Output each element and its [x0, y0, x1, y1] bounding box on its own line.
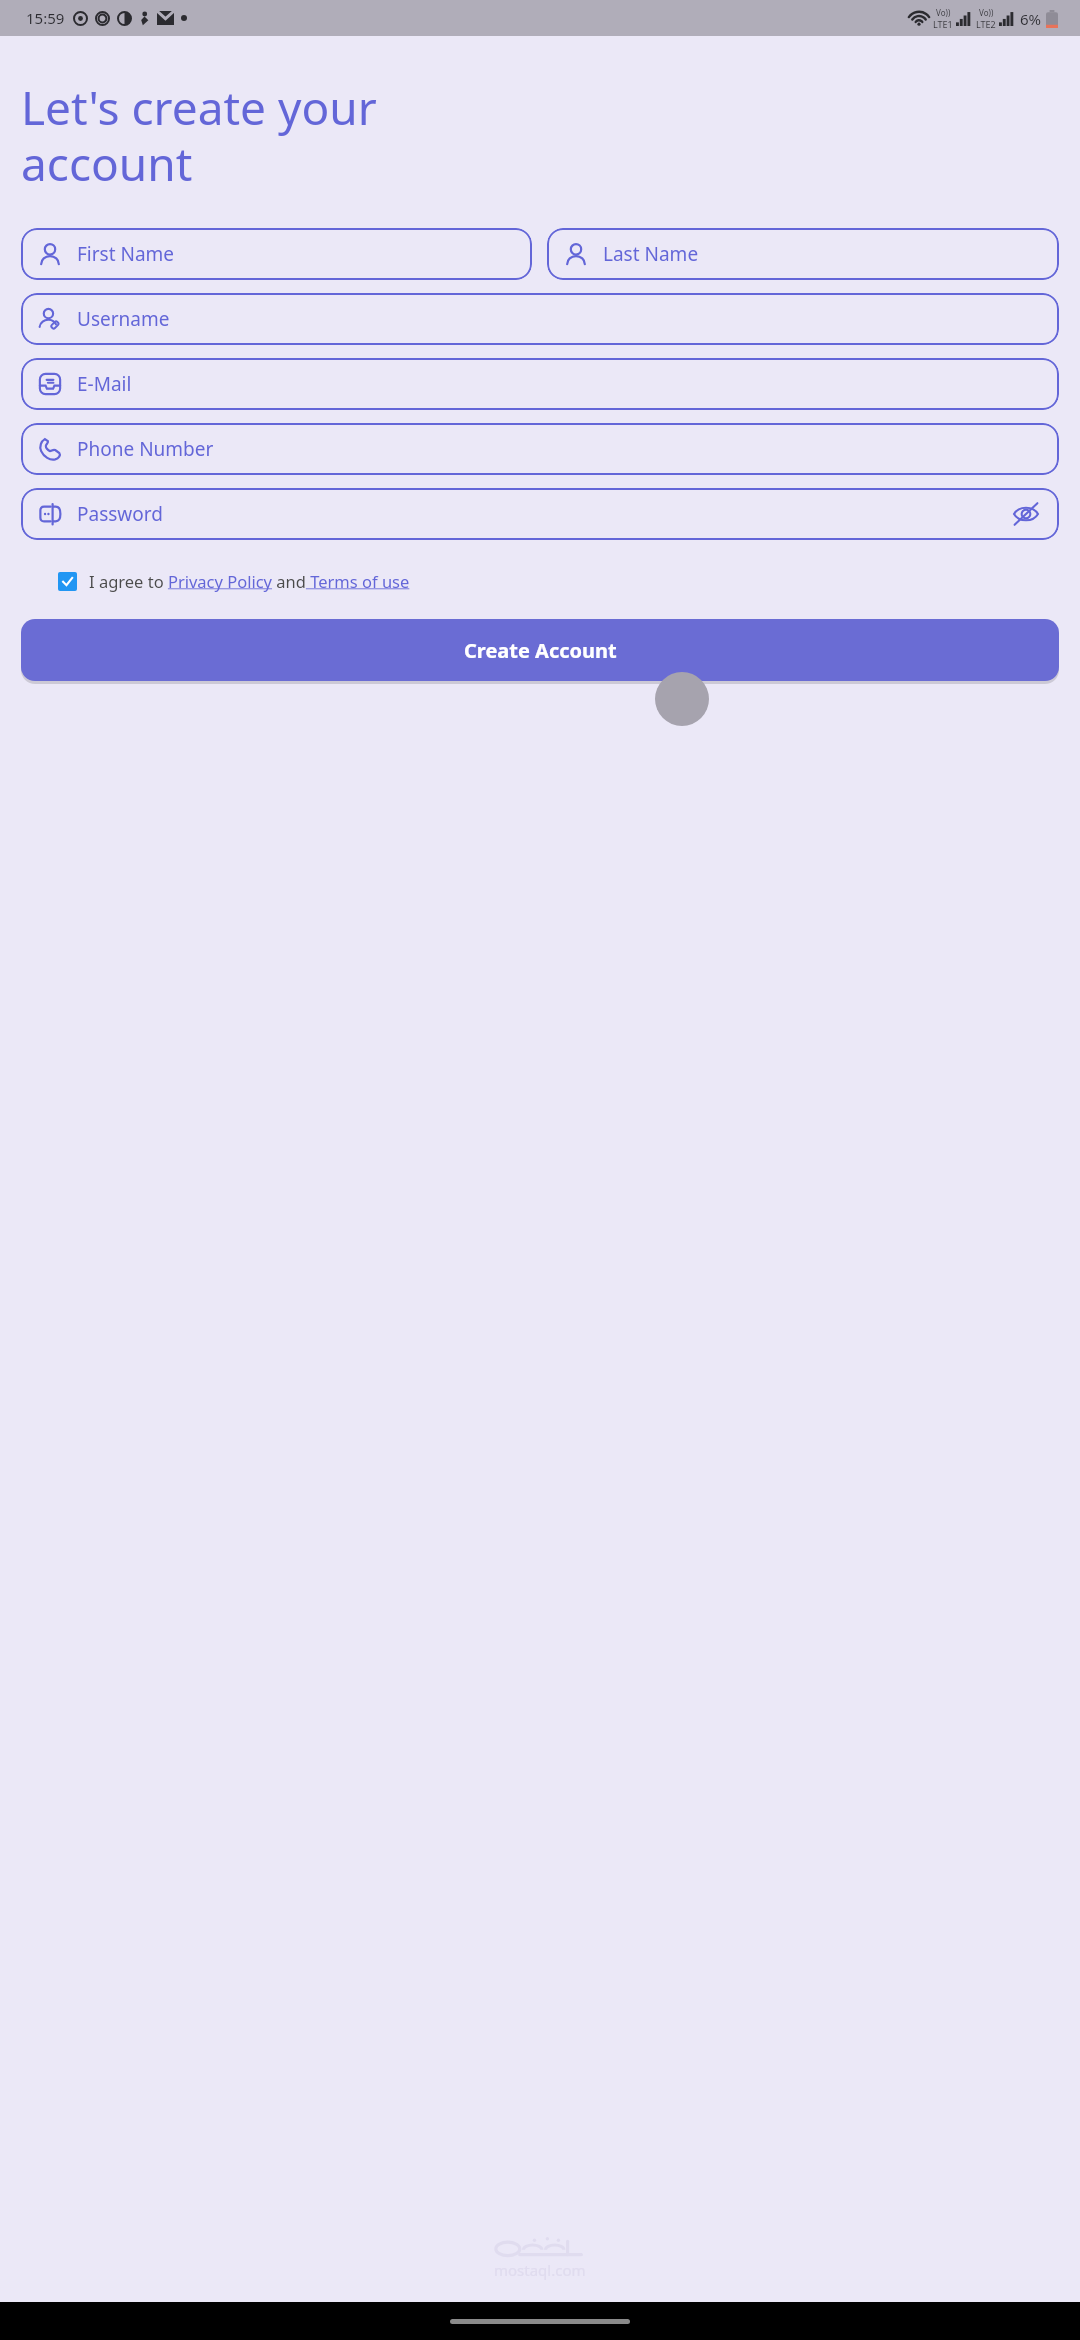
staticText: 15:59: [26, 8, 65, 28]
button[interactable]: E-Mail: [21, 358, 1059, 410]
staticText: Vo)): [979, 7, 994, 18]
button[interactable]: Password: [21, 488, 1059, 540]
staticText: Last Name: [603, 241, 699, 267]
staticText: E-Mail: [77, 371, 132, 397]
button[interactable]: Last Name: [547, 228, 1059, 280]
button[interactable]: Toggle password visibility: [1009, 497, 1043, 531]
staticText: First Name: [77, 241, 175, 267]
staticText: Vo)): [936, 7, 951, 18]
button[interactable]: Username: [21, 293, 1059, 345]
button[interactable]: First Name: [21, 228, 532, 280]
staticText: Password: [77, 501, 163, 527]
button[interactable]: I agree to Privacy Policy and Terms of u…: [89, 570, 410, 592]
staticText: LTE1: [933, 18, 953, 30]
button[interactable]: Create Account: [21, 619, 1059, 681]
button[interactable]: Floating assistant bubble: [655, 672, 709, 726]
staticText: 6%: [1020, 9, 1042, 29]
staticText: LTE2: [976, 18, 996, 30]
button[interactable]: Agree checkbox: [58, 572, 77, 591]
button[interactable]: Phone Number: [21, 423, 1059, 475]
staticText: mostaql.com: [494, 2260, 586, 2280]
staticText: Let's create your account: [21, 76, 377, 194]
staticText: Create Account: [464, 637, 617, 664]
staticText: Username: [77, 306, 170, 332]
staticText: Phone Number: [77, 436, 214, 462]
